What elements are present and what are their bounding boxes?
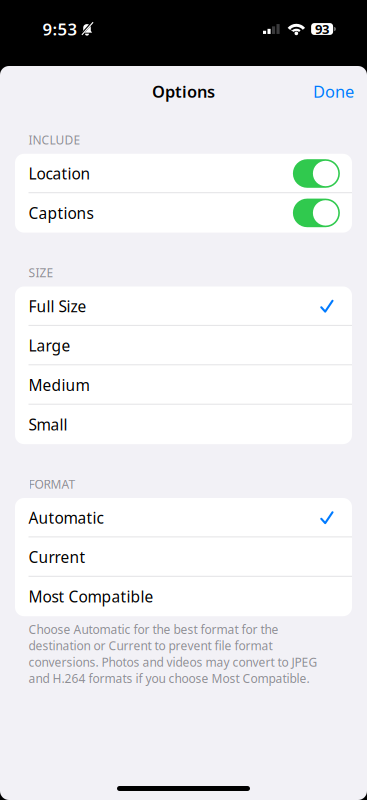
- staticText: Full Size: [28, 296, 86, 317]
- staticText: Options: [152, 80, 215, 103]
- button[interactable]: Medium: [15, 365, 352, 405]
- button[interactable]: Captions: [15, 193, 352, 233]
- staticText: Small: [28, 414, 67, 435]
- staticText: FORMAT: [28, 476, 75, 492]
- staticText: Medium: [28, 374, 89, 396]
- staticText: 93: [315, 20, 329, 38]
- staticText: SIZE: [28, 264, 53, 281]
- button[interactable]: Done: [297, 71, 367, 112]
- staticText: Location: [28, 163, 90, 184]
- button[interactable]: Large: [15, 326, 352, 365]
- button[interactable]: Small: [15, 405, 352, 444]
- staticText: Choose Automatic for the best format for…: [28, 621, 317, 687]
- staticText: Captions: [28, 202, 93, 223]
- button[interactable]: Location: [15, 154, 352, 193]
- button[interactable]: Current: [15, 537, 352, 577]
- staticText: Large: [28, 335, 70, 356]
- button[interactable]: Full Size: [15, 286, 352, 326]
- button[interactable]: Most Compatible: [15, 577, 352, 616]
- staticText: Current: [28, 547, 85, 568]
- staticText: 9:53: [42, 18, 77, 40]
- button[interactable]: Automatic: [15, 498, 352, 537]
- staticText: Done: [313, 80, 354, 103]
- staticText: Most Compatible: [28, 586, 153, 607]
- staticText: INCLUDE: [28, 132, 80, 148]
- staticText: Automatic: [28, 507, 103, 528]
